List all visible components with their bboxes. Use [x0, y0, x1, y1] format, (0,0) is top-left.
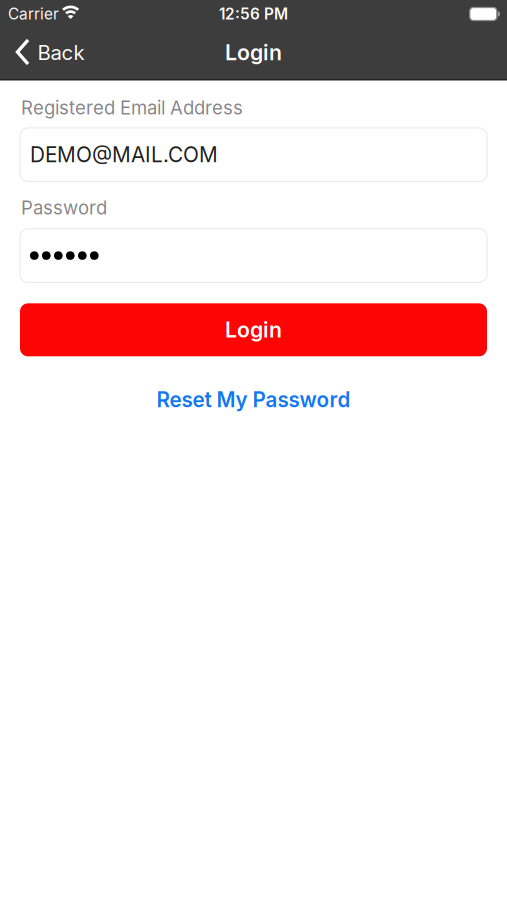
button[interactable]: Reset My Password	[156, 387, 350, 412]
button[interactable]: Registered Email Address	[20, 128, 487, 181]
staticText: Carrier	[8, 5, 59, 23]
staticText: Password	[21, 196, 107, 219]
staticText: DEMO@MAIL.COM	[30, 142, 218, 167]
staticText: Login	[225, 317, 282, 343]
button[interactable]: Back	[16, 41, 84, 66]
button[interactable]: Password	[20, 229, 487, 282]
staticText: Reset My Password	[156, 387, 350, 412]
button[interactable]: Login	[20, 303, 487, 356]
staticText: Registered Email Address	[21, 96, 243, 119]
staticText: Back	[37, 40, 84, 65]
staticText: Login	[225, 40, 282, 65]
staticText: 12:56 PM	[219, 5, 288, 23]
